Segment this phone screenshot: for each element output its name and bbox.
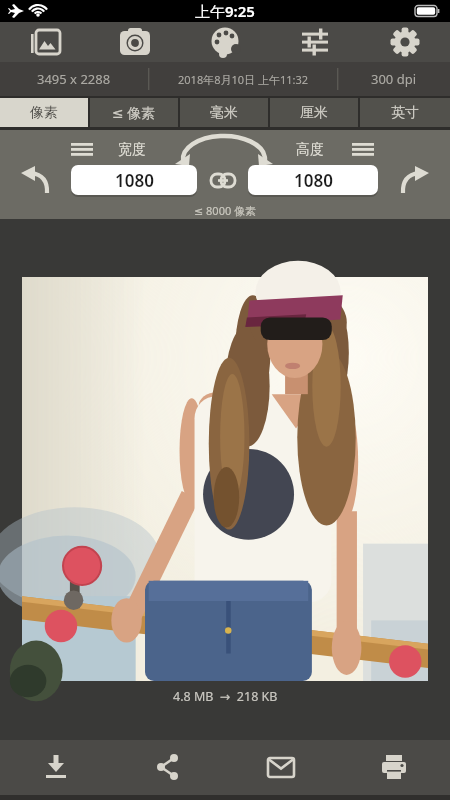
button[interactable]: 毫米 [180,98,268,127]
button[interactable] [360,22,450,62]
staticText: 2018年8月10日 上午11:32 [178,72,309,87]
button[interactable] [337,740,450,795]
staticText: ≤ 8000 像素 [194,203,257,218]
staticText: 1080 [294,169,333,192]
button[interactable] [112,740,224,795]
staticText: 像素 [30,104,58,122]
staticText: 上午9:25 [195,1,255,21]
staticText: 300 dpi [371,70,417,88]
staticText: 1080 [115,169,154,192]
button[interactable] [270,22,360,62]
button[interactable]: ≤ 像素 [90,98,178,127]
button[interactable] [224,740,337,795]
button[interactable] [90,22,180,62]
staticText: 英寸 [391,104,419,122]
staticText: 宽度 [118,141,146,159]
button[interactable]: 1080 [248,165,378,195]
button[interactable] [180,22,270,62]
button[interactable]: 厘米 [270,98,358,127]
staticText: 4.8 MB → 218 KB [173,688,278,705]
button[interactable] [0,740,112,795]
button[interactable]: 英寸 [360,98,450,127]
staticText: 3495 x 2288 [37,70,111,88]
staticText: ≤ 像素 [112,103,156,122]
staticText: 毫米 [210,104,238,122]
staticText: 高度 [296,141,324,159]
button[interactable] [0,22,90,62]
staticText: 厘米 [300,104,328,122]
button[interactable]: 1080 [71,165,197,195]
button[interactable]: 像素 [0,98,88,127]
